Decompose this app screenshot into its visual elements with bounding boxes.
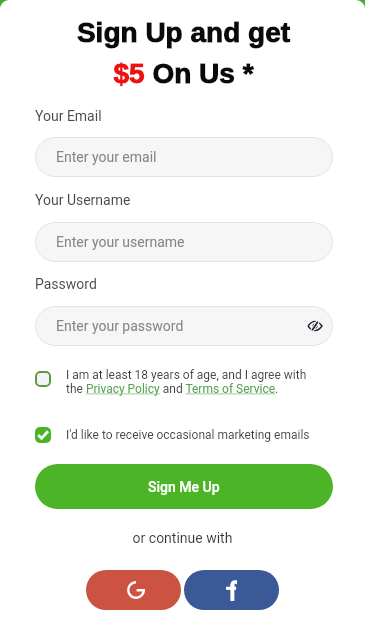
staticText: Sign Up and get: [1, 17, 365, 48]
button[interactable]: Sign Me Up: [35, 464, 333, 509]
button[interactable]: Enter your password: [35, 306, 333, 346]
button[interactable]: Continue with Google: [86, 570, 181, 610]
staticText: Sign Me Up: [148, 479, 220, 495]
button[interactable]: Show password: [303, 314, 327, 338]
staticText: Your Username: [35, 192, 131, 208]
staticText: Password: [35, 276, 97, 292]
staticText: or continue with: [0, 530, 365, 546]
button[interactable]: I'd like to receive occasional marketing…: [35, 427, 330, 443]
button[interactable]: Enter your email: [35, 137, 333, 177]
staticText: Enter your email: [56, 149, 157, 165]
button[interactable]: Enter your username: [35, 222, 333, 262]
staticText: Enter your password: [56, 318, 184, 334]
staticText: I'd like to receive occasional marketing…: [66, 428, 310, 442]
button[interactable]: Continue with Facebook: [184, 570, 279, 610]
staticText: $5 On Us *: [1, 58, 365, 89]
staticText: Enter your username: [56, 234, 185, 250]
staticText: Your Email: [35, 108, 102, 124]
staticText: I am at least 18 years of age, and I agr…: [66, 368, 323, 396]
button[interactable]: I am at least 18 years of age, and I agr…: [35, 368, 323, 396]
